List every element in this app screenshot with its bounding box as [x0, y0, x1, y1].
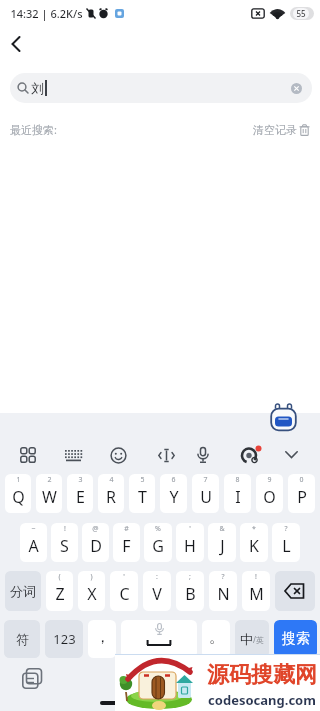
- staticText: :: [156, 572, 158, 582]
- button[interactable]: [237, 441, 265, 469]
- button[interactable]: 5: [129, 474, 155, 513]
- staticText: 符: [16, 631, 29, 647]
- staticText: #: [124, 524, 129, 534]
- staticText: ': [189, 524, 191, 534]
- staticText: 5: [140, 475, 145, 485]
- button[interactable]: ): [78, 571, 105, 611]
- staticText: 刘: [31, 80, 44, 96]
- button[interactable]: 符: [4, 620, 40, 658]
- staticText: S: [60, 535, 69, 557]
- staticText: 0: [299, 475, 304, 485]
- staticText: ): [90, 572, 93, 582]
- button[interactable]: *: [240, 523, 268, 562]
- button[interactable]: [121, 620, 197, 658]
- button[interactable]: [189, 441, 217, 469]
- button[interactable]: :: [143, 571, 171, 611]
- button[interactable]: 搜索: [274, 620, 317, 658]
- button[interactable]: 123: [45, 620, 83, 658]
- button[interactable]: !: [51, 523, 78, 562]
- button[interactable]: [16, 664, 48, 694]
- button[interactable]: 1: [5, 474, 31, 513]
- staticText: 最近搜索:: [10, 122, 57, 137]
- button[interactable]: [269, 402, 298, 432]
- button[interactable]: ;: [176, 571, 204, 611]
- staticText: 3: [78, 475, 83, 485]
- button[interactable]: 。: [202, 620, 230, 658]
- staticText: R: [106, 486, 116, 508]
- button[interactable]: ~: [20, 523, 47, 562]
- staticText: Q: [12, 486, 25, 508]
- staticText: P: [297, 486, 307, 508]
- button[interactable]: 刘: [10, 73, 312, 103]
- staticText: O: [263, 486, 276, 508]
- button[interactable]: 7: [192, 474, 219, 513]
- staticText: 7: [203, 475, 208, 485]
- staticText: ;: [189, 572, 191, 582]
- button[interactable]: ?: [272, 523, 300, 562]
- button[interactable]: %: [144, 523, 172, 562]
- staticText: %: [155, 524, 161, 534]
- button[interactable]: [104, 441, 132, 469]
- button[interactable]: @: [82, 523, 109, 562]
- staticText: X: [87, 583, 97, 605]
- staticText: 中: [240, 631, 253, 647]
- button[interactable]: &: [208, 523, 236, 562]
- staticText: M: [249, 583, 264, 605]
- staticText: T: [138, 486, 147, 508]
- staticText: H: [184, 535, 196, 557]
- button[interactable]: [291, 83, 302, 94]
- staticText: K: [249, 535, 259, 557]
- staticText: W: [42, 486, 57, 508]
- staticText: 6: [171, 475, 176, 485]
- staticText: 源码搜藏网: [207, 661, 317, 689]
- button[interactable]: 分词: [5, 571, 41, 611]
- button[interactable]: [152, 441, 180, 469]
- button[interactable]: 中: [235, 620, 269, 658]
- button[interactable]: [277, 441, 305, 469]
- staticText: 8: [235, 475, 240, 485]
- staticText: 搜索: [282, 630, 310, 648]
- staticText: L: [282, 535, 291, 557]
- button[interactable]: !: [242, 571, 270, 611]
- button[interactable]: ?: [209, 571, 237, 611]
- button[interactable]: [1, 29, 31, 59]
- button[interactable]: 清空记录: [253, 123, 310, 137]
- button[interactable]: [14, 441, 42, 469]
- staticText: 55: [296, 8, 306, 19]
- button[interactable]: [275, 571, 315, 611]
- button[interactable]: 3: [67, 474, 93, 513]
- staticText: ，: [95, 628, 110, 647]
- button[interactable]: 6: [160, 474, 187, 513]
- staticText: 123: [53, 630, 76, 648]
- button[interactable]: ': [176, 523, 204, 562]
- button[interactable]: ': [110, 571, 138, 611]
- staticText: C: [119, 583, 130, 605]
- staticText: /英: [253, 634, 264, 645]
- staticText: 9: [267, 475, 272, 485]
- staticText: E: [76, 486, 85, 508]
- button[interactable]: 2: [36, 474, 62, 513]
- staticText: A: [28, 535, 39, 557]
- staticText: F: [122, 535, 131, 557]
- staticText: *: [252, 524, 256, 534]
- staticText: I: [235, 486, 241, 508]
- button[interactable]: (: [46, 571, 73, 611]
- staticText: (: [58, 572, 61, 582]
- staticText: U: [200, 486, 212, 508]
- staticText: !: [255, 572, 257, 582]
- button[interactable]: 0: [288, 474, 315, 513]
- button[interactable]: 4: [98, 474, 124, 513]
- button[interactable]: #: [113, 523, 140, 562]
- staticText: ~: [31, 524, 36, 534]
- button[interactable]: 9: [256, 474, 283, 513]
- staticText: 清空记录: [253, 123, 297, 137]
- staticText: G: [152, 535, 164, 557]
- button[interactable]: 8: [224, 474, 251, 513]
- staticText: ?: [221, 572, 225, 582]
- staticText: N: [217, 583, 230, 605]
- button[interactable]: [59, 441, 87, 469]
- button[interactable]: ，: [88, 620, 116, 658]
- staticText: !: [64, 524, 66, 534]
- staticText: D: [90, 535, 102, 557]
- staticText: codesocang.com: [208, 691, 316, 709]
